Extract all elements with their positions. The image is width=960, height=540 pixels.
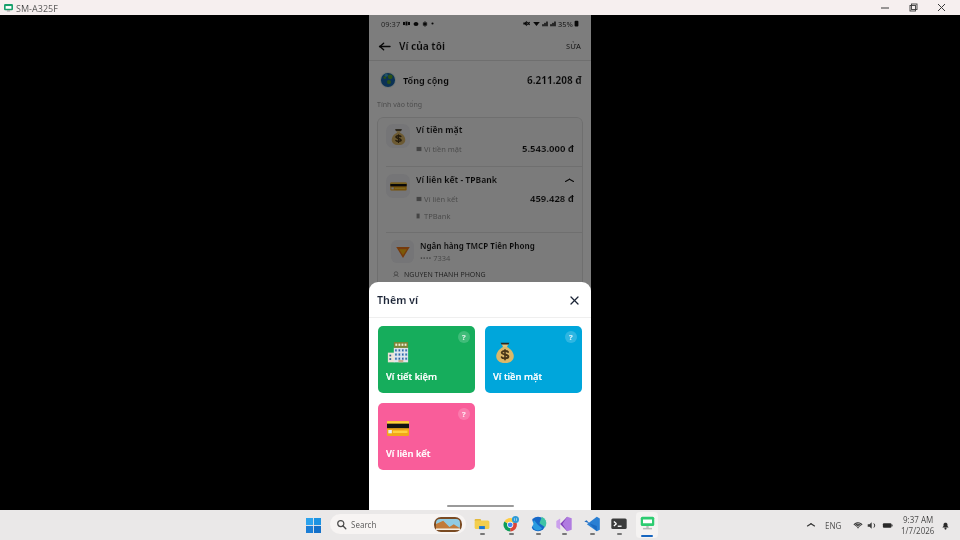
button[interactable]: Battery (879, 515, 895, 535)
button[interactable]: App (527, 512, 549, 538)
staticText: Ví của tôi (399, 39, 445, 53)
staticText: Tổng cộng (403, 74, 449, 86)
staticText: Ví liên kết (424, 194, 459, 204)
staticText: NGUYEN THANH PHONG (404, 270, 486, 280)
button[interactable]: Back (375, 37, 393, 55)
staticText: •••• 7334 (420, 253, 451, 263)
staticText: Ví tiết kiệm (386, 370, 437, 383)
staticText: Search (351, 519, 377, 530)
button[interactable]: Ví liên kết - TPBank (386, 174, 574, 221)
staticText: 5.543.000 đ (522, 142, 574, 155)
button[interactable]: ? (378, 326, 475, 393)
staticText: ? (569, 332, 573, 342)
staticText: 6.211.208 đ (527, 73, 582, 87)
button[interactable]: Volume (863, 515, 879, 535)
staticText: Ví liên kết (386, 447, 431, 460)
staticText: Ngân hàng TMCP Tiên Phong (420, 240, 535, 251)
button[interactable]: ? (378, 403, 475, 470)
staticText: 1/7/2026 (901, 525, 935, 536)
button[interactable]: App (581, 512, 603, 538)
staticText: ? (462, 332, 466, 342)
staticText: 35% (558, 19, 573, 29)
button[interactable]: Close (927, 0, 956, 15)
staticText: 09:37 (381, 19, 401, 29)
button[interactable]: 9:37 AM (898, 513, 938, 537)
button[interactable]: Start (303, 514, 324, 536)
button[interactable]: App (553, 512, 575, 538)
staticText: ENG (825, 520, 842, 531)
button[interactable]: Search (330, 514, 466, 534)
staticText: SỬA (566, 41, 581, 51)
button[interactable]: Show hidden icons (803, 515, 819, 535)
button[interactable]: scrcpy (636, 512, 658, 538)
button[interactable]: App (471, 512, 493, 538)
button[interactable]: ENG (822, 515, 845, 535)
button[interactable]: Tổng cộng (380, 61, 582, 99)
button[interactable]: SỬA (564, 39, 583, 53)
staticText: SM-A325F (16, 2, 58, 14)
button[interactable]: Minimize (871, 0, 899, 15)
staticText: 459.428 đ (530, 192, 574, 205)
button[interactable]: App (608, 512, 630, 538)
staticText: Tính vào tổng (377, 100, 423, 110)
staticText: Ví tiền mặt (493, 370, 543, 383)
button[interactable]: Ngân hàng TMCP Tiên Phong (391, 240, 583, 263)
button[interactable]: Notifications (937, 515, 953, 535)
button[interactable]: ? (485, 326, 582, 393)
staticText: ? (462, 409, 466, 419)
staticText: Thêm ví (377, 293, 419, 307)
staticText: 9:37 AM (903, 514, 934, 525)
button[interactable]: App (500, 512, 522, 538)
button[interactable]: Ví tiền mặt (386, 124, 574, 155)
button[interactable]: Network (849, 515, 866, 535)
staticText: Ví tiền mặt (416, 124, 463, 136)
button[interactable]: Close (565, 291, 583, 309)
button[interactable]: Widgets (434, 517, 462, 532)
staticText: Ví liên kết - TPBank (416, 174, 498, 186)
staticText: TPBank (424, 211, 451, 221)
staticText: Ví tiền mặt (424, 144, 462, 154)
button[interactable]: Restore (899, 0, 927, 15)
